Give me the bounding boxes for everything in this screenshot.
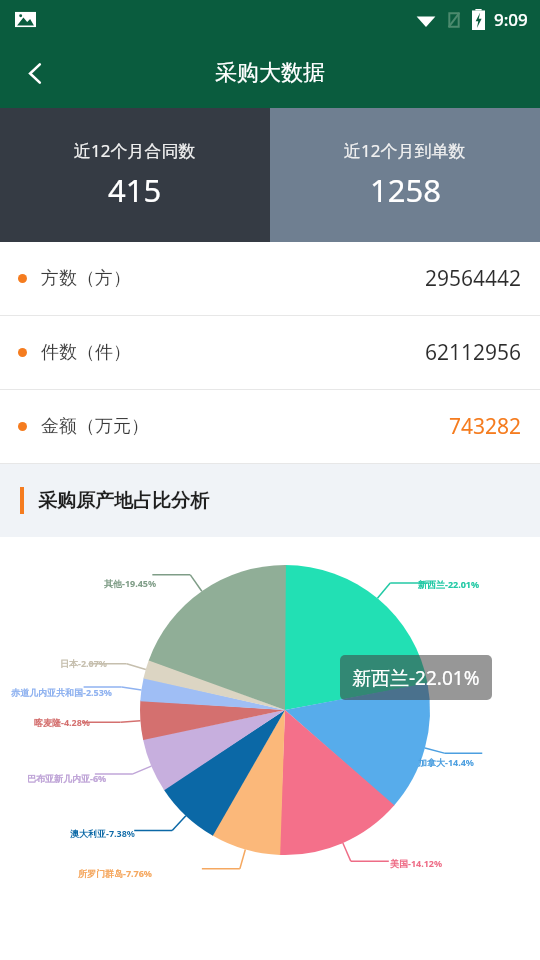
staticText: 1258 <box>370 169 441 211</box>
staticText: 澳大利亚-7.38% <box>70 827 135 839</box>
staticText: 近12个月到单数 <box>344 139 466 162</box>
staticText: 所罗门群岛-7.76% <box>78 867 152 879</box>
staticText: 采购原产地占比分析 <box>38 489 209 513</box>
button[interactable]: 近12个月到单数 <box>270 108 540 242</box>
button[interactable]: 方数（方） <box>0 242 540 315</box>
staticText: 采购大数据 <box>215 59 325 87</box>
staticText: 其他-19.45% <box>104 577 157 589</box>
staticText: 日本-2.07% <box>60 657 107 669</box>
button[interactable]: 件数（件） <box>0 316 540 389</box>
staticText: 赤道几内亚共和国-2.53% <box>11 686 112 698</box>
staticText: 743282 <box>449 412 522 441</box>
staticText: 方数（方） <box>41 267 131 290</box>
staticText: 近12个月合同数 <box>74 139 196 162</box>
staticText: 62112956 <box>425 338 522 367</box>
staticText: 9:09 <box>494 8 528 31</box>
button[interactable]: 金额（万元） <box>0 390 540 463</box>
staticText: 件数（件） <box>41 341 131 364</box>
staticText: 巴布亚新几内亚-6% <box>27 772 107 784</box>
button[interactable]: Back <box>0 38 70 108</box>
button[interactable]: 近12个月合同数 <box>0 108 270 242</box>
staticText: 金额（万元） <box>41 415 149 438</box>
button[interactable]: 采购原产地占比分析 <box>0 464 540 537</box>
staticText: 29564442 <box>425 264 522 293</box>
staticText: 415 <box>108 169 162 211</box>
staticText: 新西兰-22.01% <box>352 665 480 691</box>
staticText: 加拿大-14.4% <box>418 756 474 768</box>
staticText: 美国-14.12% <box>390 857 443 869</box>
staticText: 新西兰-22.01% <box>418 578 480 590</box>
staticText: 喀麦隆-4.28% <box>34 716 90 728</box>
